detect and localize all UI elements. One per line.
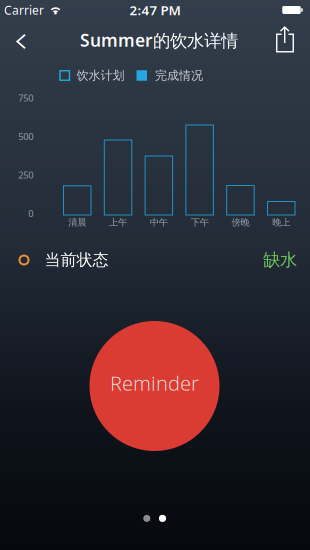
button[interactable]: Share xyxy=(270,20,300,58)
staticText: 750 xyxy=(18,92,33,104)
staticText: 傍晚 xyxy=(231,217,249,228)
staticText: Carrier xyxy=(4,2,44,18)
staticText: 缺水 xyxy=(263,249,297,271)
staticText: 饮水计划 xyxy=(76,68,124,83)
button[interactable]: Page 2 of 2 xyxy=(143,515,166,522)
button[interactable]: Back xyxy=(8,26,33,57)
staticText: 中午 xyxy=(150,217,168,228)
staticText: 0 xyxy=(28,207,33,220)
staticText: 2:47 PM xyxy=(129,1,180,19)
staticText: 上午 xyxy=(109,217,127,228)
staticText: 完成情况 xyxy=(155,68,203,83)
button[interactable]: Reminder xyxy=(89,321,219,451)
staticText: Reminder xyxy=(110,370,199,396)
staticText: 下午 xyxy=(191,217,209,228)
staticText: 500 xyxy=(18,130,33,143)
staticText: 清晨 xyxy=(68,217,86,228)
staticText: 晚上 xyxy=(272,217,290,228)
staticText: 当前状态 xyxy=(44,250,108,270)
staticText: 250 xyxy=(18,169,33,181)
staticText: Summer的饮水详情 xyxy=(80,28,238,51)
